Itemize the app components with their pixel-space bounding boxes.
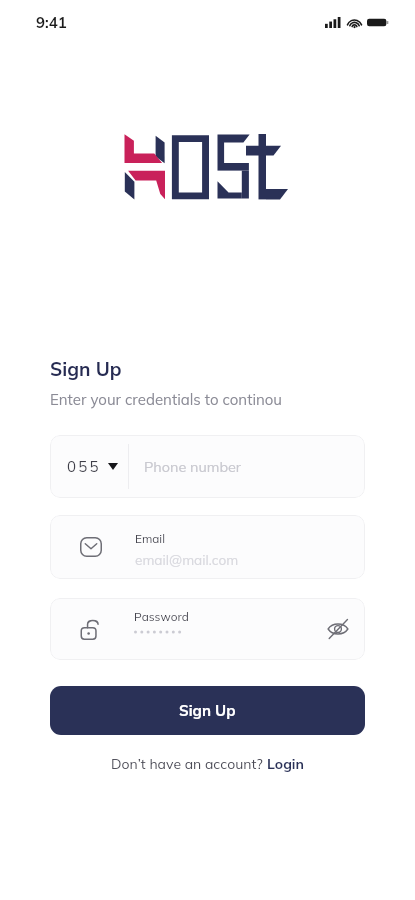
- staticText: Password: [134, 609, 189, 624]
- button[interactable]: Sign Up: [50, 686, 365, 735]
- staticText: Login: [267, 755, 304, 773]
- button[interactable]: Show password: [317, 608, 359, 650]
- staticText: 055: [67, 457, 101, 476]
- button[interactable]: Password: [50, 598, 365, 660]
- staticText: Sign Up: [50, 357, 122, 381]
- button[interactable]: Login: [267, 755, 304, 773]
- staticText: Phone number: [144, 458, 242, 476]
- staticText: Sign Up: [179, 701, 236, 720]
- staticText: email@mail.com: [135, 551, 239, 568]
- staticText: 9:41: [36, 13, 67, 32]
- button[interactable]: Email: [50, 515, 365, 579]
- staticText: Email: [135, 531, 165, 546]
- staticText: Don’t have an account?: [111, 755, 267, 773]
- staticText: Enter your credentials to continou: [50, 390, 282, 409]
- button[interactable]: 055: [50, 435, 365, 498]
